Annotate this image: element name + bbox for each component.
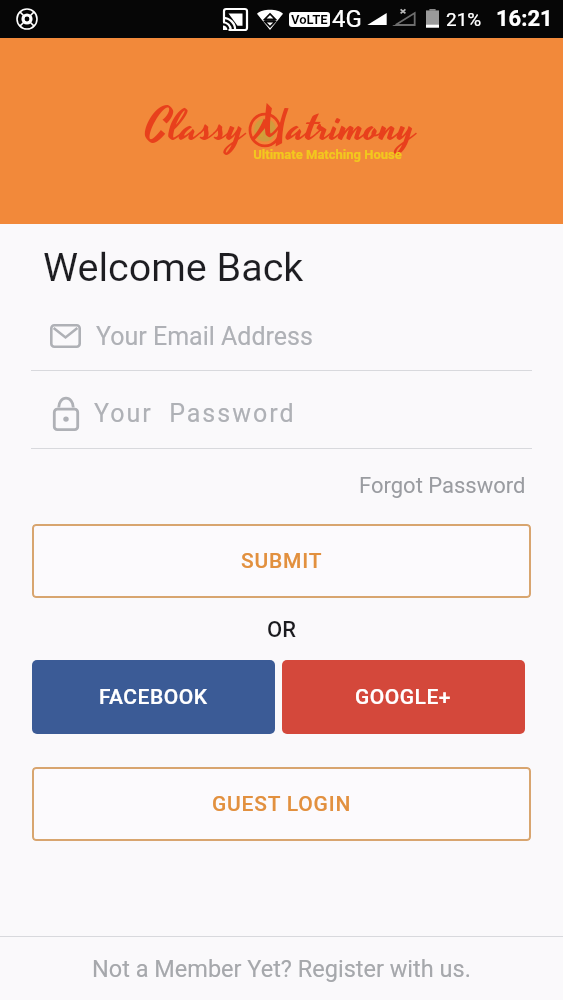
other: Screen recorder: [15, 7, 39, 31]
button[interactable]: SUBMIT: [32, 524, 531, 598]
staticText: 16:21: [496, 6, 553, 32]
staticText: Not a Member Yet? Register with us.: [92, 955, 471, 983]
button[interactable]: Not a Member Yet? Register with us.: [0, 937, 563, 1000]
button[interactable]: GUEST LOGIN: [32, 767, 531, 841]
button[interactable]: Your Password: [32, 387, 532, 439]
button[interactable]: Forgot Password: [353, 467, 532, 505]
staticText: FACEBOOK: [99, 685, 208, 710]
staticText: 4G: [332, 5, 362, 33]
staticText: Ultimate Matching House: [253, 147, 402, 162]
staticText: Your Email Address: [96, 322, 313, 351]
staticText: Your Password: [94, 399, 296, 428]
staticText: GUEST LOGIN: [212, 792, 352, 817]
button[interactable]: FACEBOOK: [32, 660, 275, 734]
staticText: VoLTE: [291, 12, 328, 27]
staticText: SUBMIT: [241, 549, 323, 574]
staticText: OR: [267, 617, 296, 643]
button[interactable]: Your Email Address: [32, 310, 532, 362]
button[interactable]: GOOGLE+: [282, 660, 525, 734]
staticText: Welcome Back: [43, 244, 304, 290]
staticText: Forgot Password: [359, 473, 526, 499]
staticText: Classy Matrimony: [145, 95, 417, 161]
staticText: GOOGLE+: [355, 685, 452, 710]
staticText: 21%: [446, 8, 482, 30]
